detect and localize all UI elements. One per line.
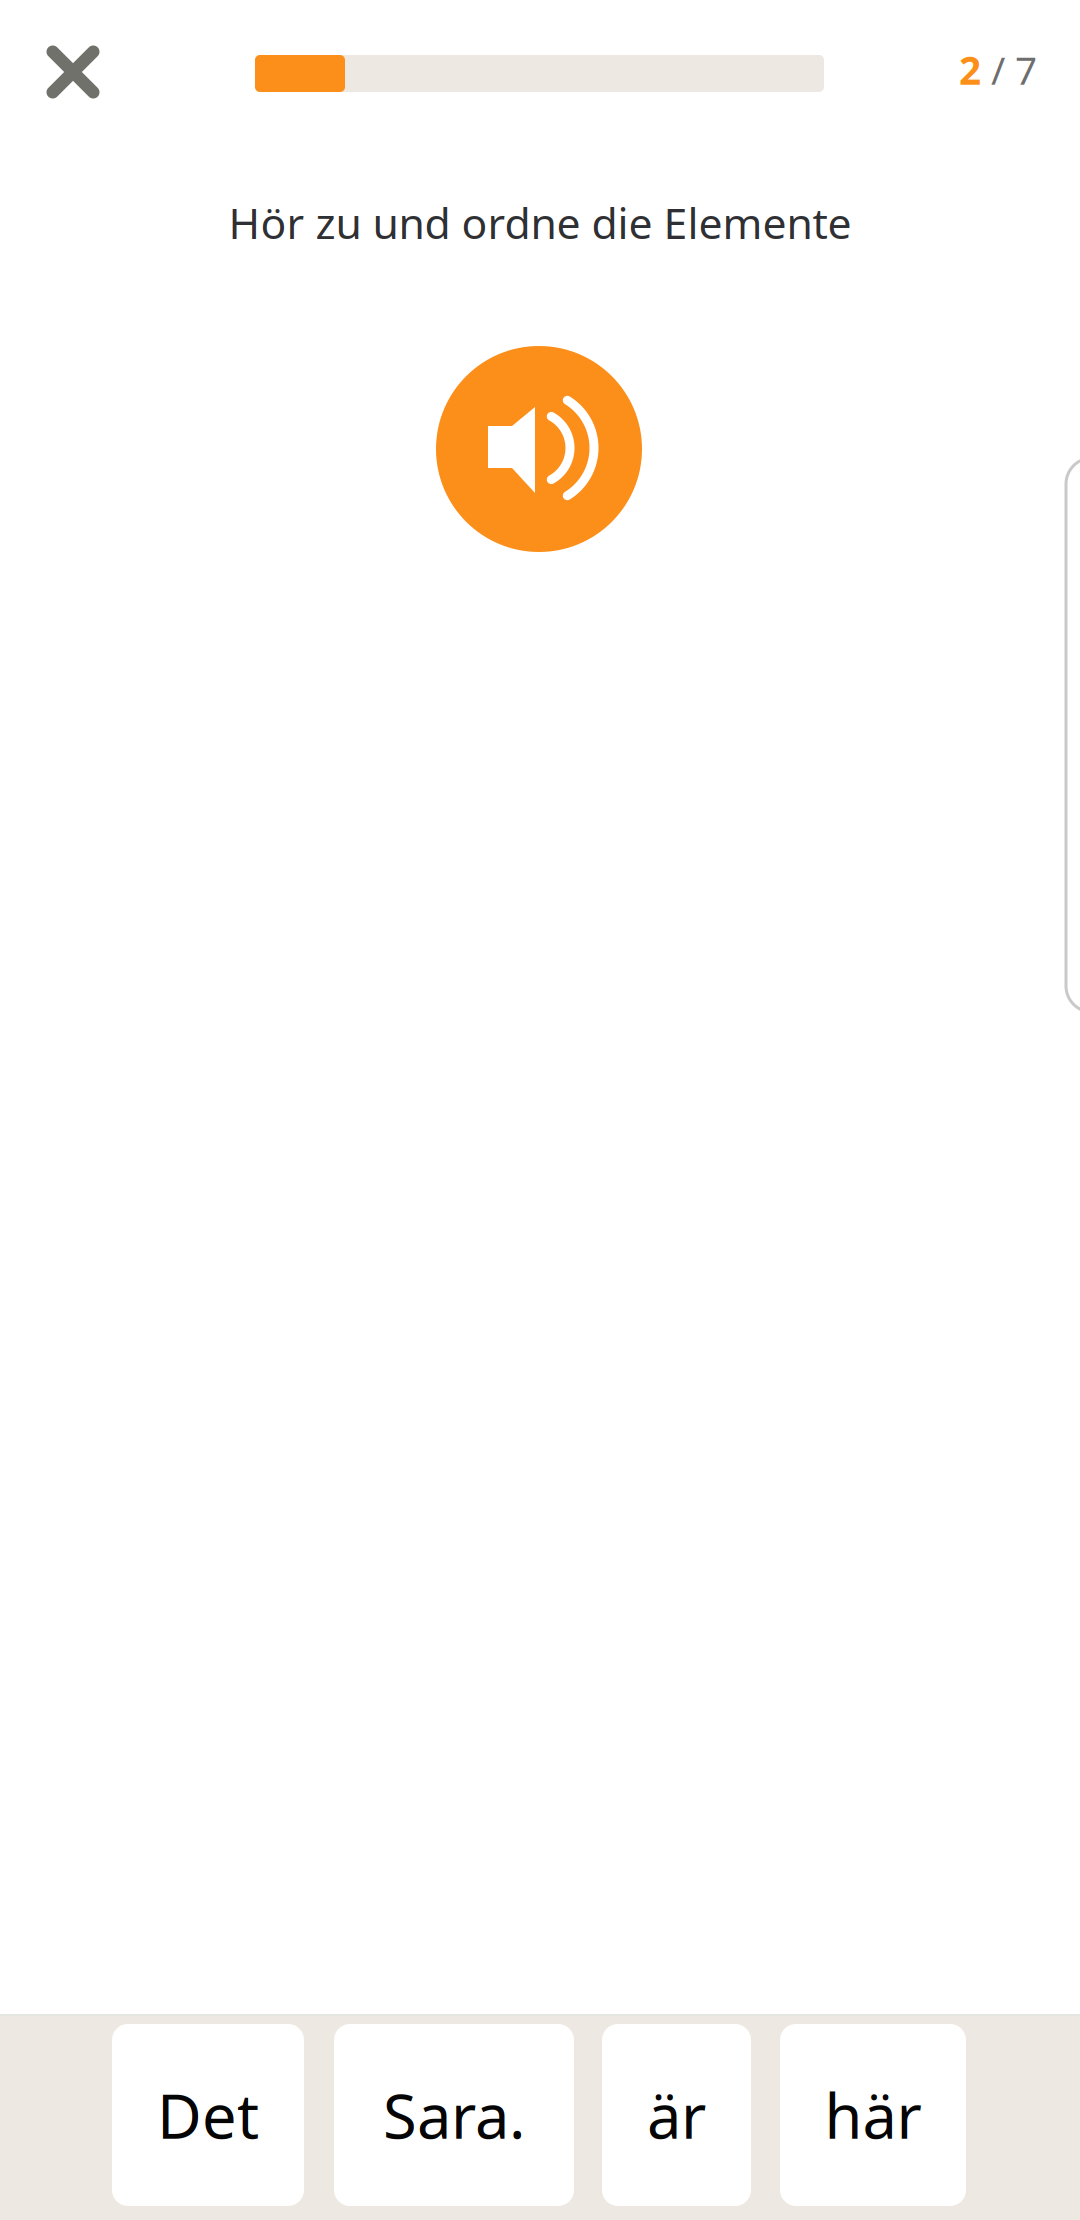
staticText: Sara. — [383, 2074, 525, 2156]
staticText: / — [981, 44, 1015, 95]
staticText: Det — [157, 2074, 259, 2156]
button[interactable]: Answer slot — [1066, 458, 1080, 1012]
staticText: 7 — [1015, 44, 1037, 95]
button[interactable]: Det — [112, 2024, 304, 2206]
button[interactable]: är — [602, 2024, 751, 2206]
staticText: Hör zu und ordne die Elemente — [228, 194, 851, 251]
staticText: är — [647, 2074, 706, 2156]
staticText: här — [824, 2074, 921, 2156]
button[interactable]: Sara. — [334, 2024, 574, 2206]
button[interactable]: Play audio — [436, 346, 642, 552]
button[interactable]: här — [780, 2024, 966, 2206]
button[interactable]: Close — [23, 22, 123, 122]
staticText: 2 — [959, 44, 981, 95]
